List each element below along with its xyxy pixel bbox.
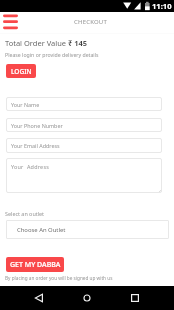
staticText: Select an outlet <box>5 210 45 217</box>
staticText: ₹ 145 <box>68 38 88 48</box>
staticText: Your Address <box>11 163 50 170</box>
staticText: Choose An Outlet <box>17 226 66 234</box>
staticText: Your Name <box>11 101 40 108</box>
staticText: 11:10 <box>152 1 172 11</box>
button[interactable]: Menu <box>2 12 19 32</box>
staticText: By placing an order you will be signed u… <box>5 275 113 281</box>
button[interactable]: GET MY DABBA <box>6 257 64 272</box>
staticText: GET MY DABBA <box>10 260 61 270</box>
button[interactable]: LOGIN <box>6 64 36 78</box>
staticText: Your Email Address <box>11 142 60 149</box>
button[interactable]: Your Name <box>6 97 162 111</box>
button[interactable]: Back <box>27 286 51 310</box>
staticText: LOGIN <box>11 67 32 76</box>
button[interactable]: Recents <box>123 286 147 310</box>
staticText: Total Order Value <box>5 38 68 48</box>
button[interactable]: Home <box>75 286 99 310</box>
button[interactable]: Choose An Outlet <box>6 220 169 239</box>
button[interactable]: Your Phone Number <box>6 118 162 132</box>
button[interactable]: Your Email Address <box>6 138 162 153</box>
button[interactable]: Your Address <box>6 158 162 193</box>
staticText: Please login or provide delivery details <box>5 51 99 58</box>
staticText: CHECKOUT <box>74 18 107 26</box>
staticText: Your Phone Number <box>11 122 63 129</box>
